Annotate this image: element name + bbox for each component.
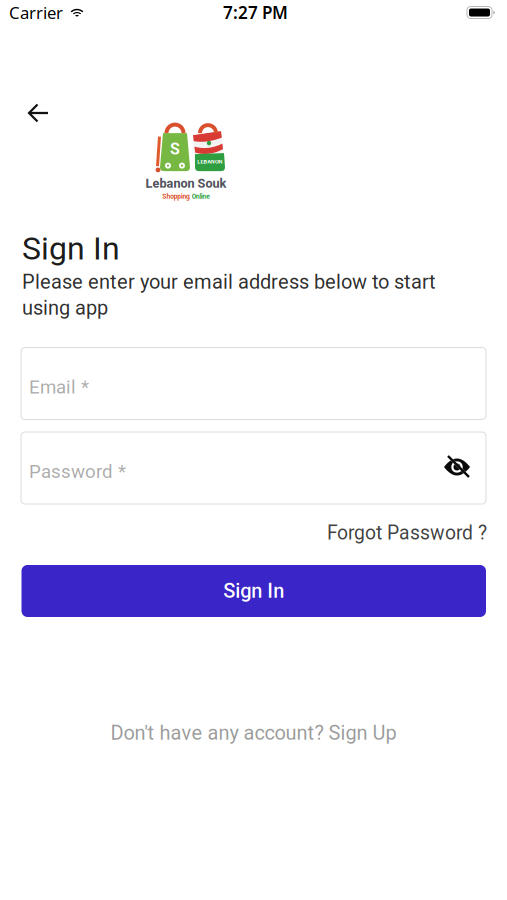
staticText: LEBANON [185, 155, 234, 168]
button[interactable]: Sign In [21, 565, 486, 617]
staticText: using app [22, 296, 108, 320]
button[interactable]: Forgot Password ? [327, 522, 487, 544]
staticText: S [170, 140, 180, 158]
staticText: Sign In [223, 579, 284, 603]
button[interactable]: Email * [21, 347, 486, 419]
button[interactable]: Password * [21, 432, 486, 504]
staticText: Please enter your email address below to… [22, 270, 436, 294]
staticText: Password * [29, 461, 126, 482]
button[interactable]: Don't have any account? Sign Up [110, 721, 396, 745]
staticText: Don't have any account? Sign Up [110, 721, 396, 745]
staticText: Shopping [153, 191, 191, 202]
staticText: Email * [29, 376, 89, 398]
staticText: Online [194, 191, 219, 202]
button[interactable] [26, 102, 51, 124]
staticText: Lebanon Souk [145, 176, 226, 191]
staticText: 7:27 PM [223, 1, 288, 24]
staticText: Forgot Password ? [327, 522, 487, 544]
staticText: Sign In [22, 230, 120, 267]
staticText: Carrier [9, 1, 63, 24]
